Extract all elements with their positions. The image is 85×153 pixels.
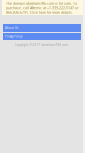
staticText: Copyright © 2017 abraham786.com xyxy=(14,43,68,47)
staticText: Privacy Policy xyxy=(5,35,22,38)
button[interactable]: Privacy Policy xyxy=(3,33,81,40)
button[interactable]: About Us xyxy=(3,24,81,32)
staticText: The domain abraham786.com is for sale. T… xyxy=(6,1,78,15)
button[interactable]: The domain abraham786.com is for sale. T… xyxy=(2,0,83,15)
staticText: About Us xyxy=(5,26,18,30)
